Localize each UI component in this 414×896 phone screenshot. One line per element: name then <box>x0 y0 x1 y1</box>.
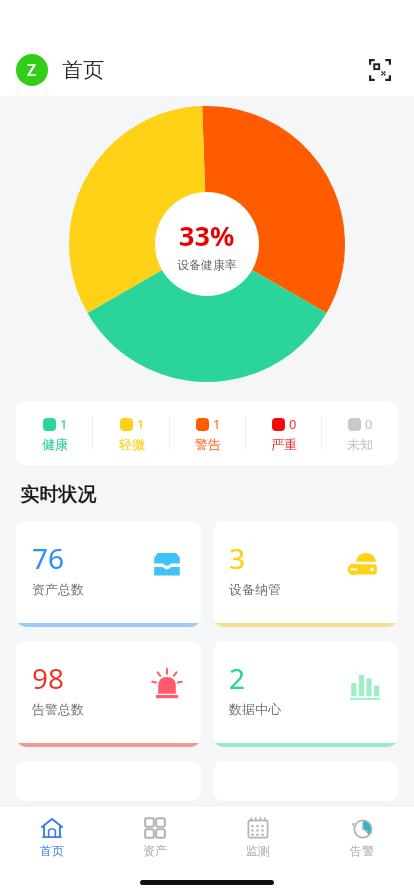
staticText: 0 <box>365 415 373 433</box>
button[interactable]: 1 <box>93 401 170 465</box>
staticText: 98 <box>32 659 65 697</box>
staticText: 1 <box>213 415 221 433</box>
staticText: 设备纳管 <box>229 581 281 597</box>
staticText: 1 <box>137 415 145 433</box>
button[interactable]: 0 <box>246 401 322 465</box>
button[interactable]: 资产 <box>103 806 206 868</box>
staticText: 告警总数 <box>32 701 84 717</box>
staticText: 健康 <box>42 436 68 452</box>
staticText: 监测 <box>246 843 270 858</box>
button[interactable]: 1 <box>170 401 246 465</box>
staticText: 资产 <box>143 843 167 858</box>
staticText: 1 <box>60 415 68 433</box>
staticText: 警告 <box>195 436 221 452</box>
button[interactable]: Profile <box>16 54 48 86</box>
staticText: 76 <box>32 539 65 577</box>
staticText: 实时状况 <box>20 483 96 507</box>
staticText: 33% <box>179 217 235 254</box>
staticText: 轻微 <box>119 436 145 452</box>
staticText: 0 <box>289 415 297 433</box>
staticText: 告警 <box>350 843 374 858</box>
button[interactable]: Scan QR code <box>362 52 398 88</box>
staticText: 未知 <box>347 436 373 452</box>
staticText: 数据中心 <box>229 701 281 717</box>
button[interactable]: 告警 <box>310 806 414 868</box>
staticText: Z <box>27 59 37 81</box>
button[interactable]: 3 <box>213 521 398 627</box>
button[interactable]: 98 <box>16 641 201 747</box>
button[interactable]: 2 <box>213 641 398 747</box>
staticText: 资产总数 <box>32 581 84 597</box>
staticText: 设备健康率 <box>177 257 237 272</box>
staticText: 2 <box>229 659 246 697</box>
staticText: 首页 <box>40 843 64 858</box>
button[interactable]: 首页 <box>0 806 103 868</box>
button[interactable]: 监测 <box>206 806 310 868</box>
staticText: 3 <box>229 539 246 577</box>
button[interactable]: 0 <box>322 401 398 465</box>
staticText: 严重 <box>271 436 297 452</box>
staticText: 首页 <box>62 57 104 83</box>
button[interactable]: 76 <box>16 521 201 627</box>
button[interactable]: 1 <box>16 401 93 465</box>
